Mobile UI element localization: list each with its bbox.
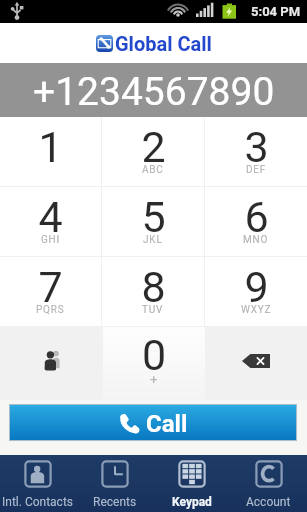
staticText: 0: [142, 330, 167, 380]
button[interactable]: Account: [230, 455, 307, 512]
staticText: Recents: [93, 495, 137, 509]
staticText: 1: [38, 122, 63, 172]
staticText: Account: [246, 495, 291, 509]
staticText: PQRS: [36, 304, 65, 316]
button[interactable]: Keypad: [153, 455, 230, 512]
button[interactable]: 3: [205, 117, 307, 186]
staticText: GHI: [41, 234, 61, 246]
staticText: Call: [146, 410, 188, 438]
staticText: DEF: [246, 164, 267, 176]
staticText: 8: [141, 262, 166, 312]
staticText: 2: [141, 122, 166, 172]
button[interactable]: 4: [0, 187, 101, 256]
staticText: MNO: [243, 234, 269, 246]
button[interactable]: 5: [102, 187, 204, 256]
button[interactable]: Intl. Contacts: [0, 455, 76, 512]
button[interactable]: 7: [0, 257, 101, 326]
staticText: +: [150, 372, 158, 387]
button[interactable]: Contacts: [0, 327, 103, 400]
staticText: Intl. Contacts: [2, 495, 74, 509]
staticText: JKL: [143, 234, 163, 246]
button[interactable]: 9: [205, 257, 307, 326]
staticText: 5:04 PM: [251, 4, 301, 19]
staticText: Global Call: [115, 32, 212, 55]
button[interactable]: 1: [0, 117, 101, 186]
button[interactable]: 8: [102, 257, 204, 326]
button[interactable]: 6: [205, 187, 307, 256]
staticText: 7: [38, 262, 63, 312]
staticText: 9: [244, 262, 269, 312]
staticText: +1234567890: [33, 69, 275, 115]
staticText: Keypad: [172, 495, 212, 509]
button[interactable]: 0: [103, 327, 205, 400]
button[interactable]: Recents: [76, 455, 153, 512]
staticText: 6: [244, 192, 269, 242]
staticText: ABC: [142, 164, 164, 176]
button[interactable]: 2: [102, 117, 204, 186]
staticText: 5: [141, 192, 166, 242]
button[interactable]: Backspace: [205, 327, 307, 400]
staticText: 4: [38, 192, 63, 242]
staticText: WXYZ: [241, 304, 272, 316]
staticText: 3: [244, 122, 269, 172]
button[interactable]: Call: [10, 405, 296, 440]
staticText: TUV: [142, 304, 164, 316]
